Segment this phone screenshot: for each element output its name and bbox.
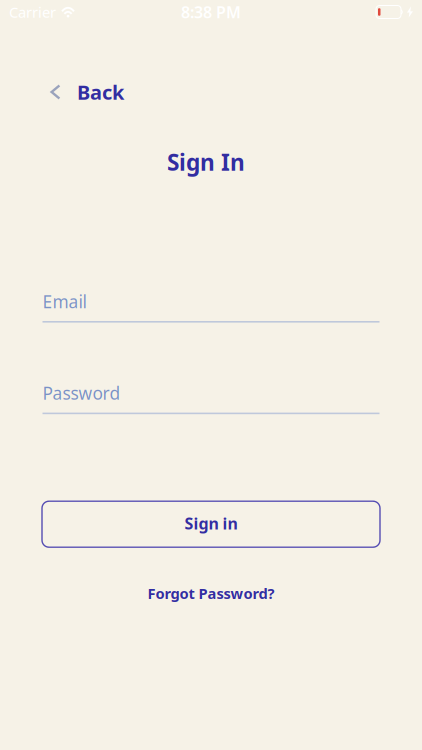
- button[interactable]: Back: [50, 79, 124, 105]
- button[interactable]: Password: [42, 385, 379, 414]
- staticText: Email: [42, 290, 86, 313]
- staticText: Forgot Password?: [147, 583, 274, 603]
- button[interactable]: Sign in: [42, 501, 380, 547]
- staticText: Back: [77, 79, 124, 105]
- button[interactable]: Email: [42, 293, 379, 323]
- staticText: Password: [42, 382, 120, 405]
- staticText: Carrier: [9, 2, 56, 22]
- staticText: 8:38 PM: [181, 1, 241, 23]
- button[interactable]: Forgot Password?: [147, 584, 274, 602]
- staticText: Sign In: [167, 147, 245, 177]
- staticText: Sign in: [184, 513, 237, 534]
